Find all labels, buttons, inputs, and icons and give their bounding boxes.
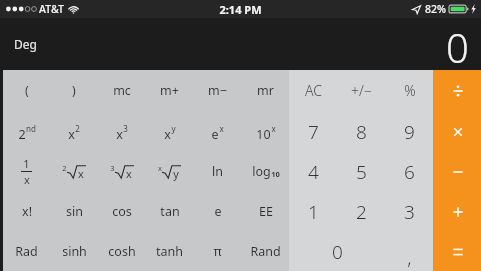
staticText: 7: [308, 119, 319, 145]
button[interactable]: cos: [98, 192, 145, 231]
button[interactable]: √3: [98, 152, 145, 191]
button[interactable]: √2: [51, 152, 97, 191]
button[interactable]: √x: [146, 152, 193, 191]
button[interactable]: sinh: [51, 232, 97, 271]
staticText: AT&T: [39, 2, 64, 16]
button[interactable]: e: [194, 192, 241, 231]
staticText: 5: [356, 159, 367, 185]
staticText: 2: [75, 123, 80, 134]
button[interactable]: 5: [338, 152, 385, 191]
button[interactable]: 1: [290, 192, 337, 231]
staticText: EE: [259, 203, 273, 220]
button[interactable]: m+: [146, 70, 193, 111]
staticText: e: [214, 203, 222, 220]
staticText: mr: [257, 82, 274, 99]
staticText: 6: [404, 159, 415, 185]
button[interactable]: +/−: [338, 70, 385, 111]
button[interactable]: Add: [434, 192, 481, 231]
staticText: 9: [404, 119, 415, 145]
button[interactable]: Decimal separator: [386, 232, 433, 271]
button[interactable]: EE: [242, 192, 289, 231]
button[interactable]: Degrees mode: [12, 34, 39, 54]
button[interactable]: 9: [386, 112, 433, 151]
staticText: Rand: [250, 243, 281, 260]
staticText: x: [24, 172, 30, 187]
staticText: x: [164, 126, 171, 143]
staticText: mc: [113, 82, 131, 99]
button[interactable]: ln: [194, 152, 241, 191]
staticText: ): [72, 82, 76, 99]
button[interactable]: %: [386, 70, 433, 111]
staticText: 0: [332, 239, 343, 265]
staticText: m+: [160, 82, 179, 99]
staticText: Rad: [15, 243, 38, 260]
staticText: sin: [66, 203, 83, 220]
staticText: cosh: [108, 243, 136, 260]
staticText: x: [116, 126, 123, 143]
button[interactable]: xy: [146, 112, 193, 151]
staticText: ,: [407, 245, 412, 271]
button[interactable]: 0: [290, 232, 385, 271]
button[interactable]: mr: [242, 70, 289, 111]
button[interactable]: 3: [386, 192, 433, 231]
button[interactable]: mc: [98, 70, 145, 111]
staticText: +/−: [351, 81, 372, 100]
button[interactable]: ex: [194, 112, 241, 151]
staticText: x: [271, 123, 276, 134]
button[interactable]: Multiply: [434, 112, 481, 151]
staticText: ln: [212, 163, 223, 180]
staticText: x: [126, 166, 132, 181]
button[interactable]: 6: [386, 152, 433, 191]
button[interactable]: log10: [242, 152, 289, 191]
staticText: x: [78, 166, 84, 181]
staticText: x: [68, 126, 75, 143]
button[interactable]: x!: [3, 192, 50, 231]
staticText: x!: [22, 203, 32, 220]
staticText: 2: [356, 199, 367, 225]
button[interactable]: x3: [98, 112, 145, 151]
staticText: cos: [112, 203, 132, 220]
button[interactable]: 1/x: [3, 152, 50, 191]
staticText: x: [219, 123, 224, 134]
button[interactable]: Open parenthesis: [3, 70, 50, 111]
staticText: 2: [18, 126, 26, 143]
button[interactable]: Subtract: [434, 152, 481, 191]
button[interactable]: 2nd: [3, 112, 50, 151]
staticText: tan: [160, 203, 180, 220]
button[interactable]: AC: [290, 70, 337, 111]
staticText: π: [213, 243, 222, 260]
button[interactable]: Divide: [434, 70, 481, 111]
button[interactable]: m−: [194, 70, 241, 111]
button[interactable]: 2: [338, 192, 385, 231]
staticText: y: [173, 166, 179, 181]
button[interactable]: Close parenthesis: [51, 70, 97, 111]
staticText: 3: [123, 123, 128, 134]
button[interactable]: x2: [51, 112, 97, 151]
button[interactable]: cosh: [98, 232, 145, 271]
staticText: 10: [256, 126, 271, 143]
button[interactable]: 4: [290, 152, 337, 191]
staticText: 8: [356, 119, 367, 145]
staticText: log: [252, 163, 271, 180]
staticText: 1: [308, 199, 319, 225]
button[interactable]: sin: [51, 192, 97, 231]
staticText: y: [171, 123, 176, 134]
staticText: AC: [305, 81, 322, 100]
button[interactable]: Rad: [3, 232, 50, 271]
button[interactable]: tanh: [146, 232, 193, 271]
button[interactable]: 10x: [242, 112, 289, 151]
staticText: m−: [208, 82, 227, 99]
button[interactable]: Pi: [194, 232, 241, 271]
staticText: nd: [26, 123, 36, 134]
button[interactable]: Equals: [434, 232, 481, 271]
button[interactable]: 8: [338, 112, 385, 151]
button[interactable]: 7: [290, 112, 337, 151]
button[interactable]: Rand: [242, 232, 289, 271]
staticText: 4: [308, 159, 319, 185]
staticText: (: [25, 82, 29, 99]
staticText: 2:14 PM: [219, 2, 262, 17]
staticText: sinh: [62, 243, 87, 260]
button[interactable]: tan: [146, 192, 193, 231]
staticText: 3: [404, 199, 415, 225]
staticText: 1: [23, 156, 30, 171]
